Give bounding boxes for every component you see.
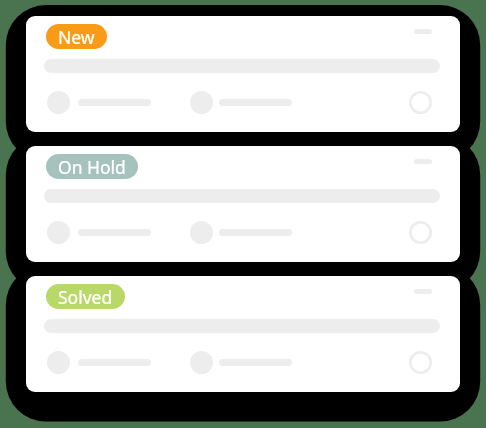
staticText: On Hold [58, 155, 126, 179]
button[interactable]: Solved [26, 276, 460, 392]
button[interactable]: On Hold [26, 146, 460, 262]
other: Status [409, 91, 432, 114]
button[interactable]: New [26, 16, 460, 132]
button[interactable]: New [46, 24, 107, 49]
staticText: Solved [58, 285, 113, 309]
button[interactable]: On Hold [46, 154, 138, 179]
button[interactable]: Solved [46, 284, 125, 309]
other: Status [409, 351, 432, 374]
other: Status [409, 221, 432, 244]
staticText: New [58, 25, 95, 49]
